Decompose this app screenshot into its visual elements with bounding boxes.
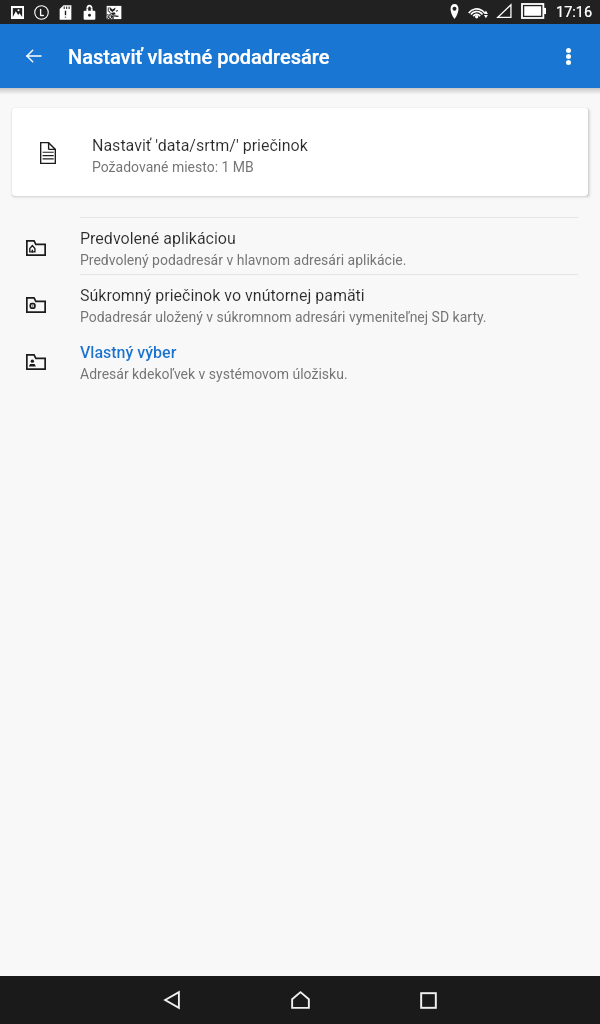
- staticText: Podadresár uložený v súkromnom adresári …: [80, 309, 487, 325]
- button[interactable]: Vlastný výber: [0, 331, 600, 388]
- staticText: Vlastný výber: [80, 343, 177, 362]
- button[interactable]: Home: [260, 976, 340, 1024]
- staticText: Adresár kdekoľvek v systémovom úložisku.: [80, 366, 348, 382]
- button[interactable]: Súkromný priečinok vo vnútornej pamäti: [0, 274, 600, 331]
- button[interactable]: Recent apps: [388, 976, 468, 1024]
- staticText: Nastaviť 'data/srtm/' priečinok: [92, 136, 308, 155]
- staticText: 17:16: [556, 4, 593, 21]
- staticText: Nastaviť vlastné podadresáre: [68, 45, 330, 68]
- staticText: Predvolený podadresár v hlavnom adresári…: [80, 252, 407, 268]
- staticText: Predvolené aplikáciou: [80, 229, 236, 248]
- button[interactable]: Predvolené aplikáciou: [0, 217, 600, 274]
- button[interactable]: Back: [132, 976, 212, 1024]
- staticText: Súkromný priečinok vo vnútornej pamäti: [80, 286, 365, 305]
- staticText: Požadované miesto: 1 MB: [92, 159, 254, 175]
- button[interactable]: Nastaviť 'data/srtm/' priečinok: [12, 108, 588, 196]
- button[interactable]: Navigate up: [0, 24, 68, 88]
- button[interactable]: More options: [544, 24, 592, 88]
